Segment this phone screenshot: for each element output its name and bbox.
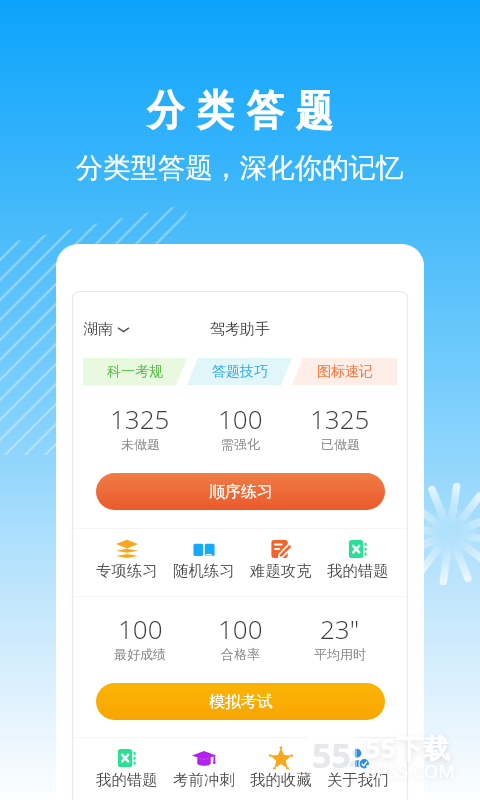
button[interactable]: 科一考规 [83,358,187,385]
button[interactable]: 100 [190,401,290,452]
staticText: 专项练习 [96,561,158,580]
button[interactable]: 1325 [290,401,390,452]
staticText: 答题技巧 [212,363,268,381]
staticText: 模拟考试 [209,692,273,712]
button[interactable]: 我的收藏 [242,746,319,789]
staticText: 关于我们 [327,770,389,789]
staticText: 图标速记 [317,363,373,381]
button[interactable]: 23" [290,611,390,662]
button[interactable]: 100 [190,611,290,662]
staticText: 合格率 [221,646,260,662]
button[interactable]: 湖南 [83,319,129,339]
staticText: PP55.COM [365,759,456,784]
button[interactable]: 关于我们 [319,746,396,789]
staticText: 难题攻克 [250,561,312,580]
staticText: 100 [118,611,163,646]
button[interactable]: 模拟考试 [96,683,385,720]
staticText: 我的错题 [327,561,389,580]
button[interactable]: 我的错题 [319,537,396,580]
staticText: 我的收藏 [250,770,312,789]
staticText: 100 [218,401,263,436]
button[interactable]: 答题技巧 [187,358,292,385]
staticText: 1325 [310,401,370,436]
button[interactable]: 考前冲刺 [165,746,242,789]
staticText: 湖南 [83,320,113,339]
staticText: 我的错题 [96,770,158,789]
button[interactable]: 1325 [90,401,190,452]
staticText: 需强化 [221,436,260,452]
button[interactable]: 难题攻克 [242,537,319,580]
staticText: 100 [218,611,263,646]
staticText: 随机练习 [173,561,235,580]
staticText: 驾考助手 [210,320,270,339]
staticText: 分类型答题，深化你的记忆 [76,151,404,185]
staticText: 已做题 [321,436,360,452]
staticText: 23" [320,611,360,646]
button[interactable]: 专项练习 [88,537,165,580]
staticText: 分类答题 [141,85,339,138]
button[interactable]: 随机练习 [165,537,242,580]
button[interactable]: 图标速记 [292,358,397,385]
staticText: 科一考规 [107,363,163,381]
staticText: 1325 [110,401,170,436]
staticText: 55 [312,732,351,771]
staticText: 未做题 [121,436,160,452]
staticText: 最好成绩 [114,646,166,662]
staticText: 55下载 [365,729,450,766]
button[interactable]: 我的错题 [88,746,165,789]
staticText: 平均用时 [314,646,366,662]
button[interactable]: 100 [90,611,190,662]
button[interactable]: 顺序练习 [96,473,385,510]
staticText: 考前冲刺 [173,770,235,789]
staticText: 顺序练习 [209,482,273,502]
